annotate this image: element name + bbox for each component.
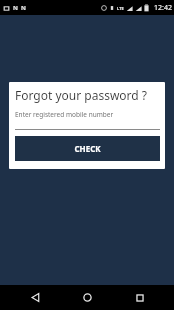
staticText: Forgot your password ?	[15, 87, 148, 103]
button[interactable]: CHECK	[15, 136, 160, 161]
button[interactable]: Back	[17, 285, 53, 310]
button[interactable]: Recent apps	[122, 285, 158, 310]
staticText: N	[13, 4, 18, 12]
button[interactable]: Home	[69, 285, 105, 310]
staticText: LTE	[117, 6, 124, 11]
staticText: Enter registered mobile number	[15, 110, 114, 119]
staticText: 12:42	[154, 3, 172, 13]
staticText: N	[21, 4, 26, 12]
staticText: CHECK	[74, 143, 101, 154]
